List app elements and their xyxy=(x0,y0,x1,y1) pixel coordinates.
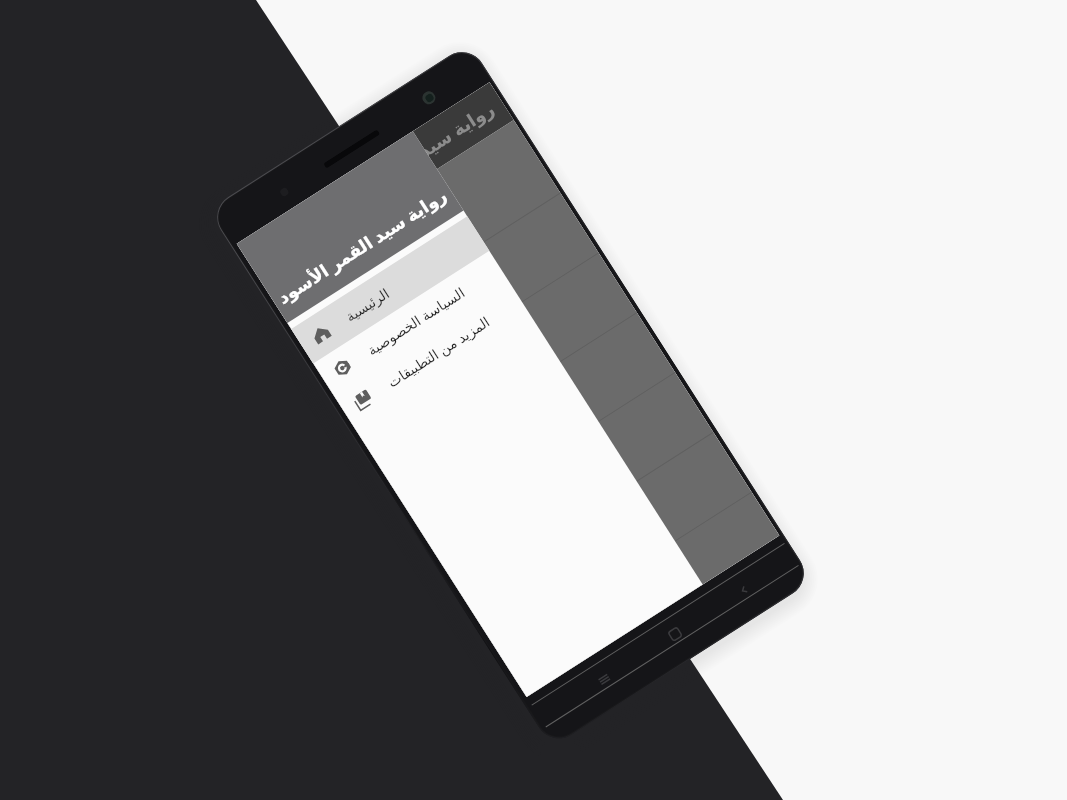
button[interactable]: الرئيسية xyxy=(291,216,489,363)
button[interactable]: Recent apps xyxy=(586,661,622,697)
button[interactable]: المزيد من التطبيقات xyxy=(334,283,530,427)
staticText: المزيد من التطبيقات xyxy=(384,312,493,391)
staticText: السياسة الخصوصية xyxy=(363,282,469,359)
button[interactable]: Back xyxy=(726,572,762,608)
button[interactable]: السياسة الخصوصية xyxy=(313,251,510,395)
staticText: رواية سيد القمر الأسود xyxy=(272,182,451,309)
button[interactable]: Home xyxy=(657,616,693,652)
button[interactable]: رواية سيد القمر الأسود xyxy=(237,82,514,282)
staticText: رواية سيد القمر الأسود xyxy=(315,97,499,226)
staticText: الرئيسية xyxy=(343,285,393,325)
